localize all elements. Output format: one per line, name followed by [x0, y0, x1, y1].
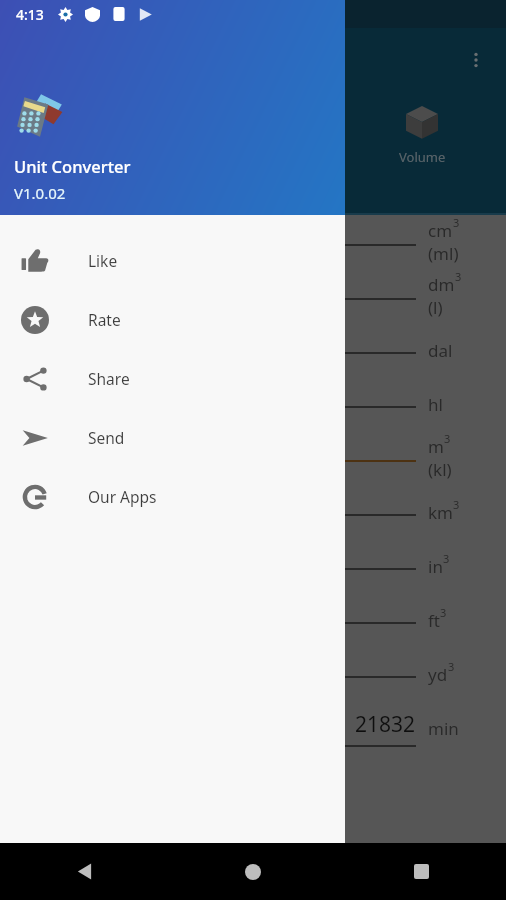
- button[interactable]: Home: [168, 843, 337, 900]
- staticText: 21832: [355, 710, 416, 739]
- staticText: 3: [453, 497, 460, 512]
- staticText: Share: [88, 368, 130, 389]
- staticText: in: [428, 555, 443, 578]
- button[interactable]: Rate: [0, 290, 345, 349]
- staticText: Unit Converter: [14, 155, 131, 177]
- staticText: 3: [453, 215, 460, 230]
- button[interactable]: Our Apps: [0, 467, 345, 526]
- staticText: V1.0.02: [14, 183, 66, 203]
- button[interactable]: Back: [0, 843, 168, 900]
- button[interactable]: hl: [0, 377, 506, 431]
- staticText: ft: [428, 609, 440, 632]
- button[interactable]: Recents: [337, 843, 506, 900]
- staticText: (l): [428, 296, 443, 319]
- button[interactable]: cm: [0, 215, 506, 269]
- button[interactable]: Send: [0, 408, 345, 467]
- staticText: 3: [443, 551, 450, 566]
- staticText: Rate: [88, 309, 121, 330]
- button[interactable]: dal: [0, 323, 506, 377]
- staticText: Send: [88, 427, 125, 448]
- staticText: dal: [428, 339, 453, 362]
- staticText: 3: [444, 431, 451, 446]
- button[interactable]: yd: [0, 647, 506, 701]
- staticText: min: [428, 717, 459, 740]
- staticText: 3: [448, 659, 455, 674]
- staticText: Like: [88, 250, 118, 271]
- staticText: km: [428, 501, 453, 524]
- staticText: hl: [428, 393, 443, 416]
- button[interactable]: m: [0, 431, 506, 485]
- button[interactable]: ft: [0, 593, 506, 647]
- button[interactable]: Share: [0, 349, 345, 408]
- button[interactable]: Volume: [380, 102, 464, 166]
- button[interactable]: Like: [0, 231, 345, 290]
- staticText: (kl): [428, 458, 452, 481]
- button[interactable]: km: [0, 485, 506, 539]
- staticText: dm: [428, 273, 455, 296]
- button[interactable]: in: [0, 539, 506, 593]
- button[interactable]: dm: [0, 269, 506, 323]
- staticText: Our Apps: [88, 486, 157, 507]
- staticText: 3: [440, 605, 447, 620]
- button[interactable]: 21832: [0, 701, 506, 755]
- staticText: m: [428, 435, 444, 458]
- staticText: cm: [428, 219, 453, 242]
- staticText: yd: [428, 663, 448, 686]
- staticText: 3: [455, 269, 462, 284]
- button[interactable]: More options: [460, 44, 492, 76]
- staticText: (ml): [428, 242, 459, 265]
- staticText: Volume: [399, 148, 446, 166]
- staticText: 4:13: [16, 5, 44, 24]
